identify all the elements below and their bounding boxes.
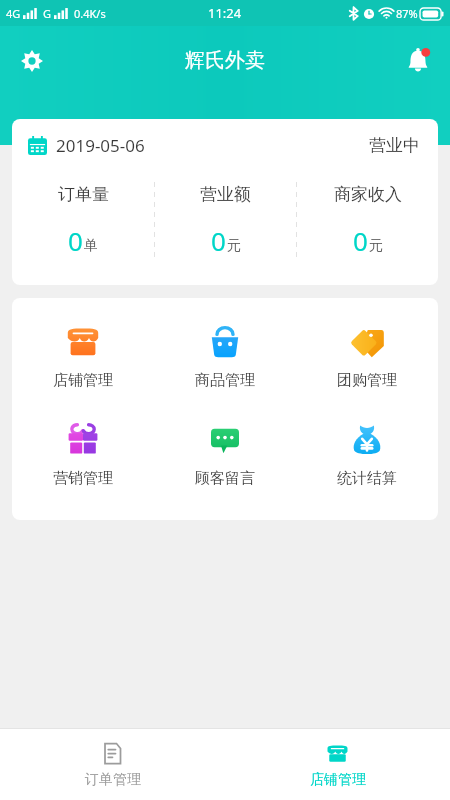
staticText: 单 bbox=[84, 237, 98, 255]
staticText: 0.4K/s bbox=[74, 6, 106, 21]
staticText: 0 bbox=[211, 223, 226, 258]
button[interactable]: 订单管理 bbox=[0, 729, 225, 800]
button[interactable]: 团购管理 bbox=[296, 320, 438, 392]
button[interactable]: Notifications bbox=[398, 41, 438, 81]
staticText: 87% bbox=[396, 6, 418, 21]
staticText: 营业额 bbox=[200, 184, 251, 205]
button[interactable]: 营销管理 bbox=[12, 418, 154, 490]
staticText: 元 bbox=[369, 237, 383, 255]
staticText: 元 bbox=[227, 237, 241, 255]
staticText: 营业中 bbox=[369, 135, 420, 156]
staticText: 订单管理 bbox=[85, 771, 141, 789]
button[interactable]: 商家收入 bbox=[297, 157, 438, 285]
staticText: 顾客留言 bbox=[195, 469, 255, 488]
button[interactable]: 顾客留言 bbox=[154, 418, 296, 490]
staticText: 店铺管理 bbox=[310, 771, 366, 789]
staticText: 营销管理 bbox=[53, 469, 113, 488]
staticText: 11:24 bbox=[208, 4, 242, 22]
button[interactable]: 统计结算 bbox=[296, 418, 438, 490]
button[interactable]: 店铺管理 bbox=[12, 320, 154, 392]
staticText: 2019-05-06 bbox=[56, 134, 145, 157]
staticText: 商家收入 bbox=[334, 184, 402, 205]
staticText: 订单量 bbox=[58, 184, 109, 205]
staticText: 店铺管理 bbox=[53, 371, 113, 390]
button[interactable]: 营业额 bbox=[155, 157, 296, 285]
staticText: G bbox=[43, 6, 52, 21]
staticText: 团购管理 bbox=[337, 371, 397, 390]
button[interactable]: 店铺管理 bbox=[225, 729, 450, 800]
staticText: 0 bbox=[353, 223, 368, 258]
staticText: 4G bbox=[6, 6, 21, 21]
button[interactable]: 2019-05-06 bbox=[12, 119, 438, 171]
staticText: 商品管理 bbox=[195, 371, 255, 390]
staticText: 0 bbox=[68, 223, 83, 258]
staticText: 统计结算 bbox=[337, 469, 397, 488]
button[interactable]: 商品管理 bbox=[154, 320, 296, 392]
staticText: 辉氏外卖 bbox=[185, 48, 265, 73]
button[interactable]: Settings bbox=[12, 41, 52, 81]
button[interactable]: 订单量 bbox=[12, 157, 154, 285]
